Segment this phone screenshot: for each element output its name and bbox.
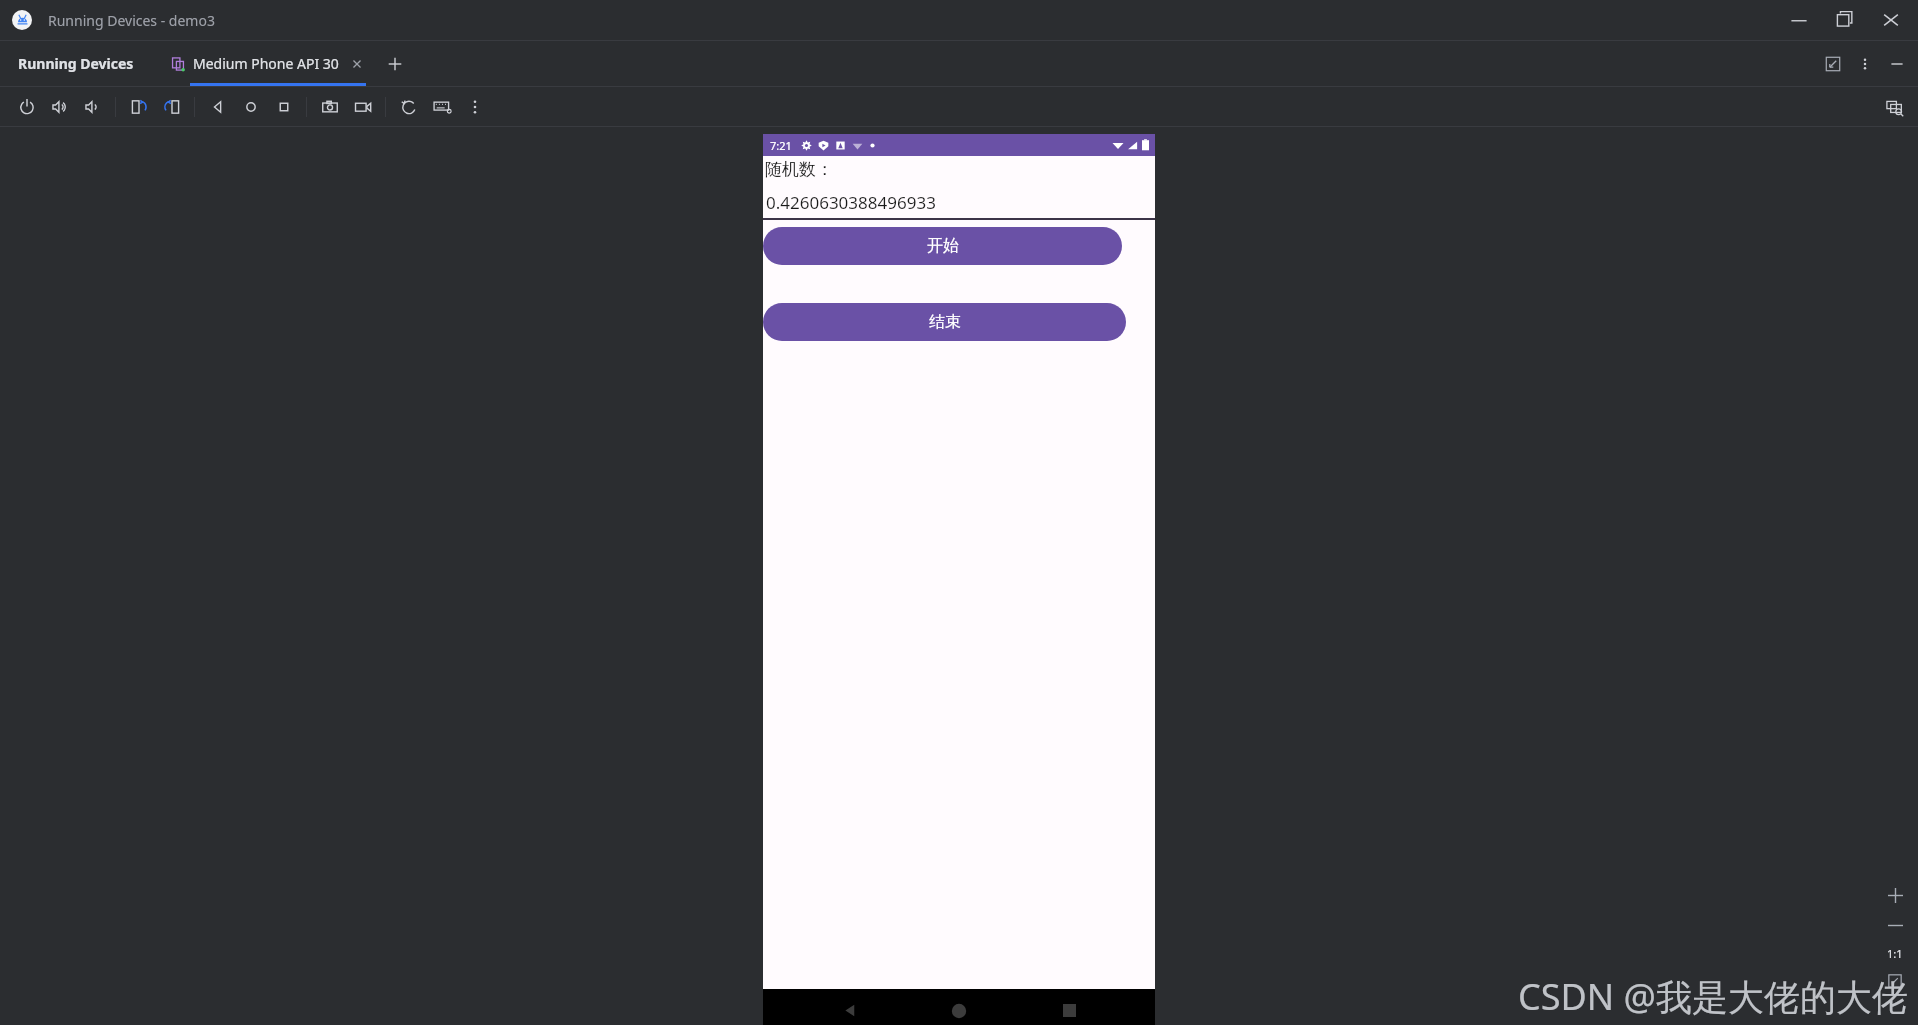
button[interactable]: Volume down	[76, 87, 109, 126]
button[interactable]: More	[458, 87, 491, 126]
button[interactable]: Keyboard	[425, 87, 458, 126]
button[interactable]: Actual size	[1880, 939, 1910, 967]
button[interactable]: 开始	[763, 227, 1122, 265]
button[interactable]: Running Devices	[16, 46, 136, 81]
staticText: CSDN @我是大佬的大佬	[1518, 972, 1908, 1021]
button[interactable]: Rotate left	[122, 87, 155, 126]
button[interactable]: New tab	[381, 50, 409, 78]
staticText: 7:21	[770, 138, 792, 153]
button[interactable]: Volume up	[43, 87, 76, 126]
button[interactable]: Record screen	[346, 87, 379, 126]
staticText: 随机数：	[765, 159, 833, 180]
staticText: Medium Phone API 30	[193, 54, 339, 73]
button[interactable]: Restore	[1822, 1, 1868, 39]
staticText: 开始	[927, 236, 959, 256]
button[interactable]: Zoom out	[1880, 911, 1910, 939]
staticText: 1:1	[1887, 946, 1903, 961]
button[interactable]: Rotate back	[392, 87, 425, 126]
button[interactable]: Close tab	[349, 56, 365, 72]
button[interactable]: Recents	[1046, 989, 1092, 1025]
button[interactable]: Home	[936, 989, 982, 1025]
button[interactable]: Collapse	[1820, 51, 1846, 77]
staticText: Running Devices - demo3	[48, 11, 215, 30]
button[interactable]: Hide	[1884, 51, 1910, 77]
button[interactable]: 0.4260630388496933	[763, 191, 1155, 220]
button[interactable]: Fit to window	[1880, 967, 1910, 995]
button[interactable]: Overview	[267, 87, 300, 126]
button[interactable]: More options	[1852, 51, 1878, 77]
staticText: 0.4260630388496933	[766, 191, 936, 214]
button[interactable]: Screenshot	[313, 87, 346, 126]
staticText: Running Devices	[18, 54, 134, 73]
button[interactable]: Close	[1868, 1, 1914, 39]
button[interactable]: Medium Phone API 30	[166, 41, 369, 86]
button[interactable]: Back	[827, 989, 873, 1025]
button[interactable]: Inspect	[1880, 93, 1908, 121]
staticText: 结束	[929, 312, 961, 332]
button[interactable]: 结束	[763, 303, 1126, 341]
button[interactable]: Back	[201, 87, 234, 126]
button[interactable]: Minimize	[1776, 1, 1822, 39]
button[interactable]: Power	[10, 87, 43, 126]
button[interactable]: Rotate right	[155, 87, 188, 126]
button[interactable]: Home	[234, 87, 267, 126]
button[interactable]: Zoom in	[1880, 879, 1910, 911]
